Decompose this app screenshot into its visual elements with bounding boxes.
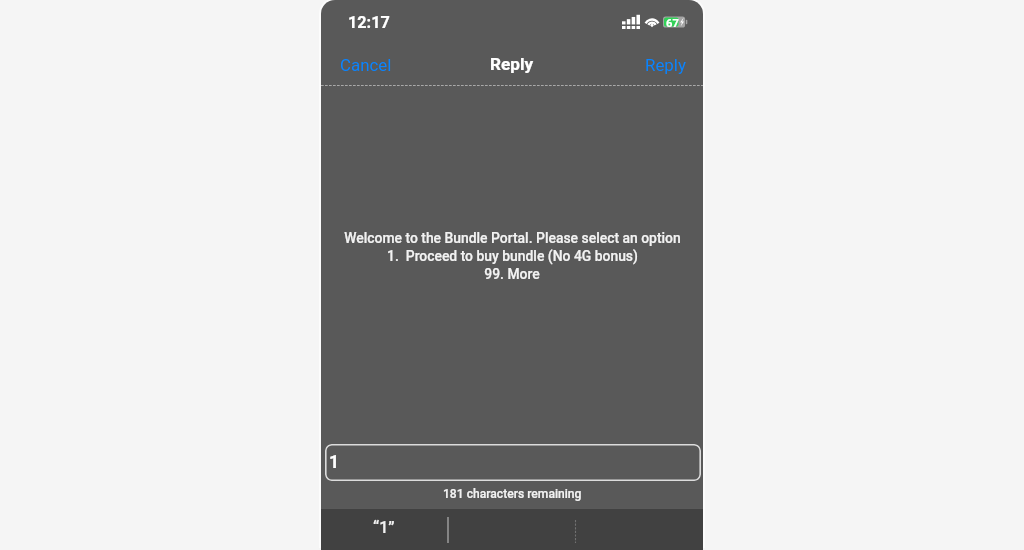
staticText: 99. More [484,266,540,282]
button[interactable]: “1” [321,508,448,550]
staticText: 1 [329,452,340,473]
staticText: Welcome to the Bundle Portal. Please sel… [344,230,681,246]
staticText: Reply [490,54,534,74]
staticText: 67 [666,17,679,30]
button[interactable]: 1 [325,444,701,481]
staticText: Cancel [340,55,392,75]
staticText: “1” [373,518,395,537]
button[interactable]: Suggestion [575,508,703,550]
staticText: 1. Proceed to buy bundle (No 4G bonus) [387,248,638,264]
other: Cellular signal [622,15,640,29]
button[interactable]: Suggestion [448,508,575,550]
staticText: Reply [645,55,686,75]
button[interactable]: Reply [638,50,693,80]
other: Battery 67 percent charging [663,15,688,29]
staticText: 181 characters remaining [443,487,582,501]
staticText: 12:17 [348,13,390,32]
button[interactable]: Cancel [333,50,399,80]
other: Wi-Fi [644,15,660,29]
